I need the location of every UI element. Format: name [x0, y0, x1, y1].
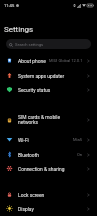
staticText: Settings [4, 25, 34, 34]
button[interactable]: Lock screen [0, 187, 97, 202]
staticText: Search settings [15, 42, 44, 47]
staticText: On [77, 152, 83, 157]
button[interactable]: Connection & sharing [0, 161, 97, 176]
staticText: Connection & sharing [18, 166, 83, 172]
button[interactable]: SIM cards & mobile networks [0, 110, 97, 130]
staticText: Mia5 [73, 137, 83, 142]
staticText: Lock screen [18, 192, 83, 198]
staticText: Bluetooth [18, 152, 77, 158]
staticText: Display [18, 206, 83, 212]
staticText: Wi-Fi [18, 137, 73, 143]
staticText: SIM cards & mobile networks [18, 114, 83, 126]
staticText: System apps updater [18, 73, 83, 79]
button[interactable]: Display [0, 201, 97, 216]
staticText: MIUI Global 12.0.1 [49, 58, 83, 63]
button[interactable]: Search settings [6, 39, 91, 49]
button[interactable]: Wi-Fi [0, 132, 97, 147]
staticText: 11:45 [4, 3, 15, 8]
button[interactable]: Bluetooth [0, 147, 97, 162]
button[interactable]: Security status [0, 82, 97, 97]
button[interactable]: About phone [0, 53, 97, 68]
staticText: About phone [18, 58, 49, 64]
button[interactable]: System apps updater [0, 68, 97, 83]
staticText: Security status [18, 87, 83, 93]
